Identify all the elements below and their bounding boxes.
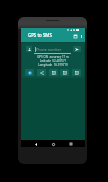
staticText: Latitude 52.407571 <box>22 59 84 63</box>
button[interactable]: Open in Maps <box>25 69 34 76</box>
button[interactable]: Home <box>50 141 56 147</box>
staticText: Phone number <box>36 47 62 52</box>
button[interactable]: More options <box>78 33 84 39</box>
button[interactable]: Share location <box>37 69 46 76</box>
staticText: GPS to SMS <box>28 32 52 38</box>
button[interactable]: Pick contact <box>26 46 32 52</box>
button[interactable]: Screenshot <box>60 69 69 76</box>
button[interactable]: Send SMS <box>73 46 81 52</box>
button[interactable]: Recents <box>68 141 74 147</box>
staticText: Longitude 16.919719 <box>22 63 84 67</box>
staticText: GPS ON accuracy 17 m <box>22 55 84 59</box>
button[interactable]: Copy <box>49 69 58 76</box>
button[interactable]: History <box>72 69 81 76</box>
button[interactable]: Back <box>33 141 39 147</box>
button[interactable]: Map mode <box>72 33 78 39</box>
